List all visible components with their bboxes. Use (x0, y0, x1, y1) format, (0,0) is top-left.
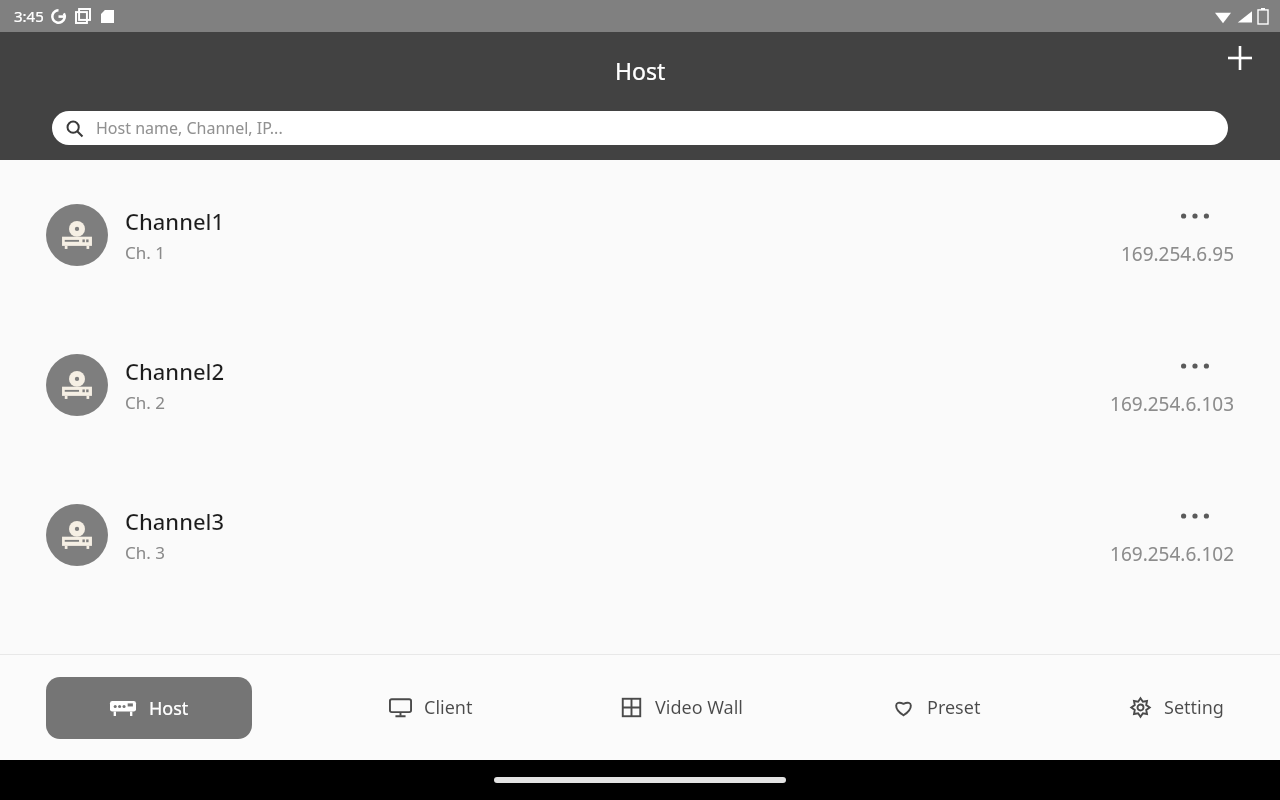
staticText: 3:45 (14, 6, 44, 26)
staticText: 169.254.6.103 (1110, 391, 1234, 417)
button[interactable]: More options (1173, 203, 1217, 229)
staticText: Host (615, 55, 666, 86)
staticText: Channel3 (125, 506, 225, 536)
staticText: Channel1 (125, 206, 225, 236)
staticText: Preset (927, 695, 981, 720)
staticText: Host name, Channel, IP... (96, 117, 283, 139)
staticText: Channel2 (125, 356, 225, 386)
button[interactable]: Setting (1119, 683, 1234, 732)
staticText: 169.254.6.102 (1110, 541, 1234, 567)
staticText: Ch. 2 (125, 391, 165, 414)
button[interactable]: Add host (1214, 32, 1266, 84)
button[interactable]: More options (1173, 503, 1217, 529)
staticText: 169.254.6.95 (1120, 241, 1234, 267)
staticText: Ch. 1 (125, 241, 165, 264)
button[interactable]: Video Wall (610, 683, 754, 732)
button[interactable]: More options (1173, 353, 1217, 379)
button[interactable]: Channel3 (0, 460, 1280, 610)
button[interactable]: Host name, Channel, IP... (52, 111, 1228, 145)
staticText: Ch. 3 (125, 541, 165, 564)
staticText: Client (424, 695, 473, 720)
staticText: Setting (1164, 695, 1224, 720)
button[interactable]: Channel1 (0, 160, 1280, 310)
staticText: Host (149, 696, 189, 721)
button[interactable]: Preset (882, 683, 991, 732)
staticText: Video Wall (655, 695, 744, 720)
button[interactable]: Channel2 (0, 310, 1280, 460)
button[interactable]: Client (379, 683, 483, 732)
button[interactable]: Host (46, 677, 252, 739)
